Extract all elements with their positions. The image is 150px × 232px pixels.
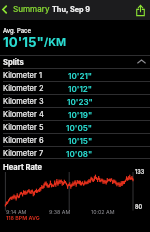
button[interactable]: Summary [1,4,51,14]
staticText: Kilometer 3 [3,97,44,106]
staticText: 10'08" [66,149,93,159]
staticText: 80 [135,204,143,211]
staticText: 10'23" [67,97,93,107]
staticText: 10'21" [68,71,93,81]
button[interactable]: Kilometer 3 [0,94,150,107]
staticText: 10'15" [3,34,44,50]
button[interactable]: Kilometer 7 [0,146,150,159]
staticText: /KM [44,36,67,49]
staticText: 9:38 AM [49,209,71,215]
button[interactable]: Splits [0,55,150,68]
staticText: 10:02 AM [91,209,115,215]
staticText: Thu, Sep 9 [52,5,91,14]
staticText: Kilometer 6 [3,136,44,145]
staticText: 118 BPM AVG [6,215,40,221]
staticText: Kilometer 2 [3,84,44,93]
button[interactable]: Kilometer 6 [0,133,150,146]
button[interactable]: Kilometer 5 [0,120,150,133]
staticText: Kilometer 5 [3,123,44,132]
staticText: 10'15" [68,136,93,146]
button[interactable]: Kilometer 1 [0,68,150,81]
staticText: Kilometer 1 [3,71,42,80]
staticText: Kilometer 4 [3,110,44,119]
button[interactable]: Kilometer 2 [0,81,150,94]
staticText: Summary [13,4,50,14]
staticText: 10'05" [66,123,93,133]
staticText: 10'12" [68,84,93,94]
button[interactable]: Kilometer 4 [0,107,150,120]
button[interactable]: Share [132,2,148,18]
staticText: Avg. Pace [3,27,31,34]
staticText: 133 [135,169,145,176]
staticText: Splits [3,58,24,67]
staticText: 10'19" [68,110,93,120]
staticText: Kilometer 7 [3,149,44,158]
staticText: Heart Rate [3,163,43,172]
staticText: 9:14 AM [6,209,27,215]
